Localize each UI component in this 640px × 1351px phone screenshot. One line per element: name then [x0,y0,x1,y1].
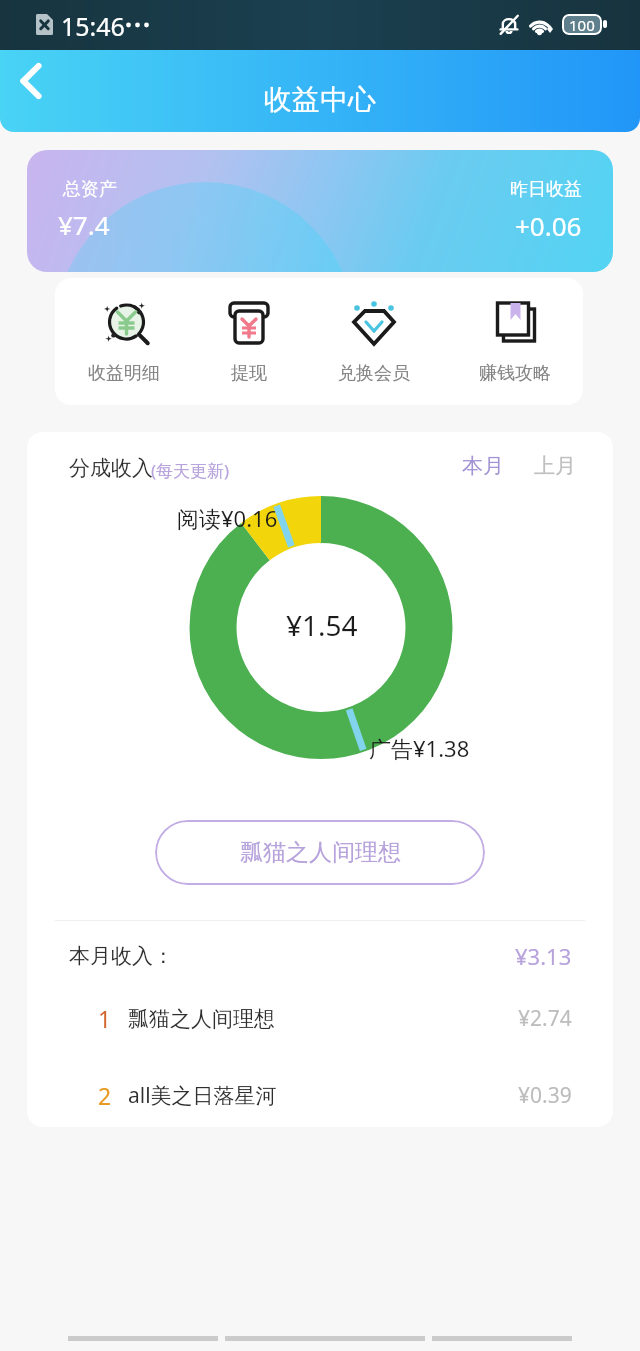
staticText: +0.06 [515,208,582,243]
button[interactable]: 1 [27,980,613,1057]
staticText: 兑换会员 [338,362,410,385]
staticText: (每天更新) [151,459,230,482]
button[interactable]: 提现 [194,278,304,405]
staticText: 收益中心 [264,82,376,117]
staticText: ¥0.39 [518,1081,572,1110]
staticText: 赚钱攻略 [479,362,551,385]
staticText: 上月 [534,453,576,479]
staticText: ¥3.13 [515,941,572,971]
button[interactable]: 本月收入： [27,917,613,994]
staticText: ¥1.54 [286,606,358,644]
staticText: 本月 [462,453,504,479]
button[interactable]: 收益明细 [69,278,179,405]
staticText: 阅读¥0.16 [177,503,278,533]
staticText: 瓢猫之人间理想 [240,838,401,867]
staticText: 广告¥1.38 [369,733,470,763]
staticText: 15:46 [61,9,125,43]
staticText: 100 [569,15,595,35]
staticText: 收益明细 [88,362,160,385]
staticText: 瓢猫之人间理想 [128,1006,275,1032]
button[interactable]: 瓢猫之人间理想 [155,820,485,885]
staticText: ¥7.4 [58,207,110,242]
staticText: 总资产 [63,178,117,201]
button[interactable]: Back [0,50,62,112]
staticText: 本月收入： [69,943,174,969]
staticText: 2 [98,1080,112,1111]
button[interactable]: 上月 [525,446,585,486]
staticText: 分成收入 [69,455,153,481]
button[interactable]: 2 [27,1057,613,1127]
staticText: ¥2.74 [518,1004,572,1033]
button[interactable]: 兑换会员 [319,278,429,405]
button[interactable]: 本月 [453,446,513,486]
staticText: 1 [98,1003,112,1034]
button[interactable]: 赚钱攻略 [460,278,570,405]
staticText: 昨日收益 [510,178,582,201]
staticText: 提现 [231,362,267,385]
staticText: all美之日落星河 [128,1081,277,1110]
